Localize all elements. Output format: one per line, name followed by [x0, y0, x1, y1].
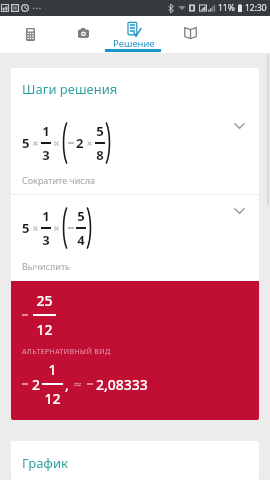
staticText: 8	[96, 146, 104, 164]
button[interactable]: Solution	[107, 16, 161, 53]
staticText: 1	[42, 207, 50, 225]
staticText: 5	[96, 122, 104, 140]
staticText: 5	[77, 207, 85, 225]
staticText: 25	[36, 291, 53, 310]
staticText: 3	[42, 146, 50, 164]
button[interactable]: Calculator	[3, 16, 57, 53]
staticText: 1	[48, 360, 57, 379]
staticText: 2,08333	[96, 375, 148, 394]
staticText: 4	[77, 231, 85, 249]
button[interactable]: Camera	[56, 16, 110, 53]
button[interactable]: 5	[11, 202, 259, 254]
staticText: 2	[76, 134, 84, 152]
staticText: Шаги решения	[22, 80, 118, 98]
staticText: 12	[44, 389, 61, 408]
staticText: Решение	[113, 37, 155, 50]
staticText: Вычислить	[22, 260, 70, 272]
staticText: 1	[42, 122, 50, 140]
button[interactable]: 5	[11, 117, 259, 169]
staticText: 3	[42, 231, 50, 249]
staticText: 11%	[218, 2, 235, 14]
other: Expand	[234, 123, 245, 129]
staticText: 5	[22, 134, 30, 152]
staticText: 12:30	[245, 2, 267, 14]
staticText: 5	[22, 219, 30, 237]
staticText: ≈	[73, 378, 83, 391]
staticText: 12	[36, 320, 53, 339]
staticText: График	[22, 454, 68, 472]
staticText: АЛЬТЕРНАТИВНЫЙ ВИД	[22, 347, 111, 357]
staticText: 2	[32, 375, 41, 394]
staticText: ,	[65, 375, 69, 394]
other: Expand	[234, 208, 245, 214]
staticText: Сократите числа	[22, 174, 96, 186]
button[interactable]: Dictionary	[163, 16, 217, 53]
